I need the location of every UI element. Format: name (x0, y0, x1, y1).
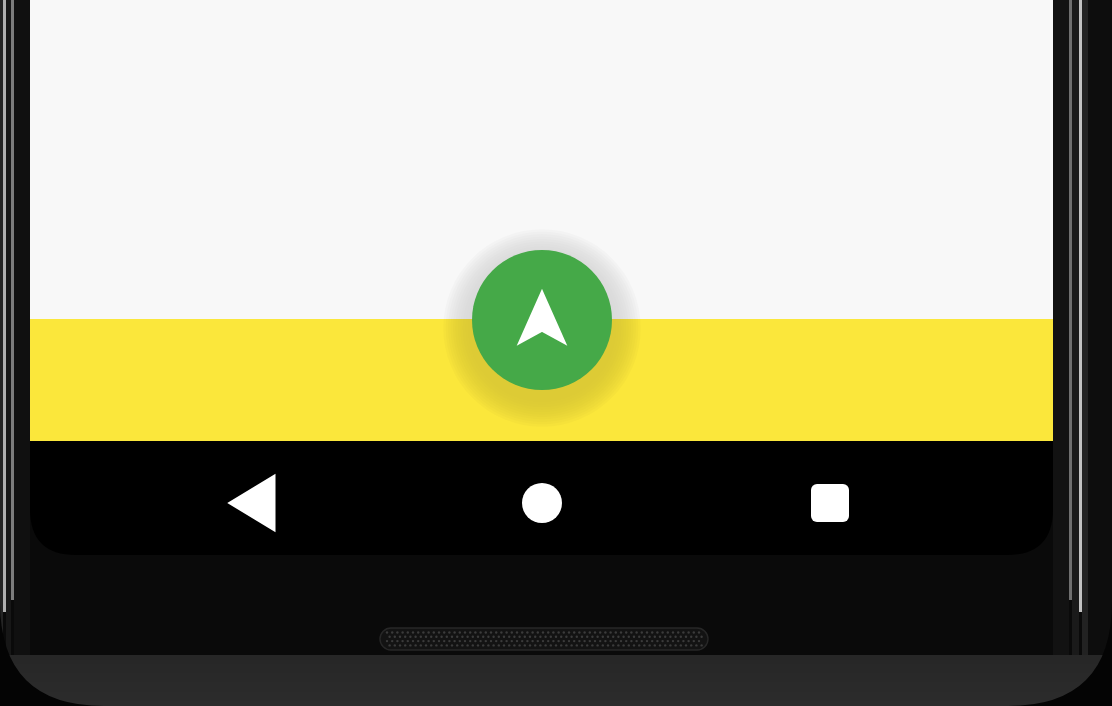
button[interactable]: Home (487, 448, 597, 558)
button[interactable]: Recent apps (775, 448, 885, 558)
button[interactable]: Start navigation (472, 250, 612, 390)
button[interactable]: Back (200, 448, 310, 558)
